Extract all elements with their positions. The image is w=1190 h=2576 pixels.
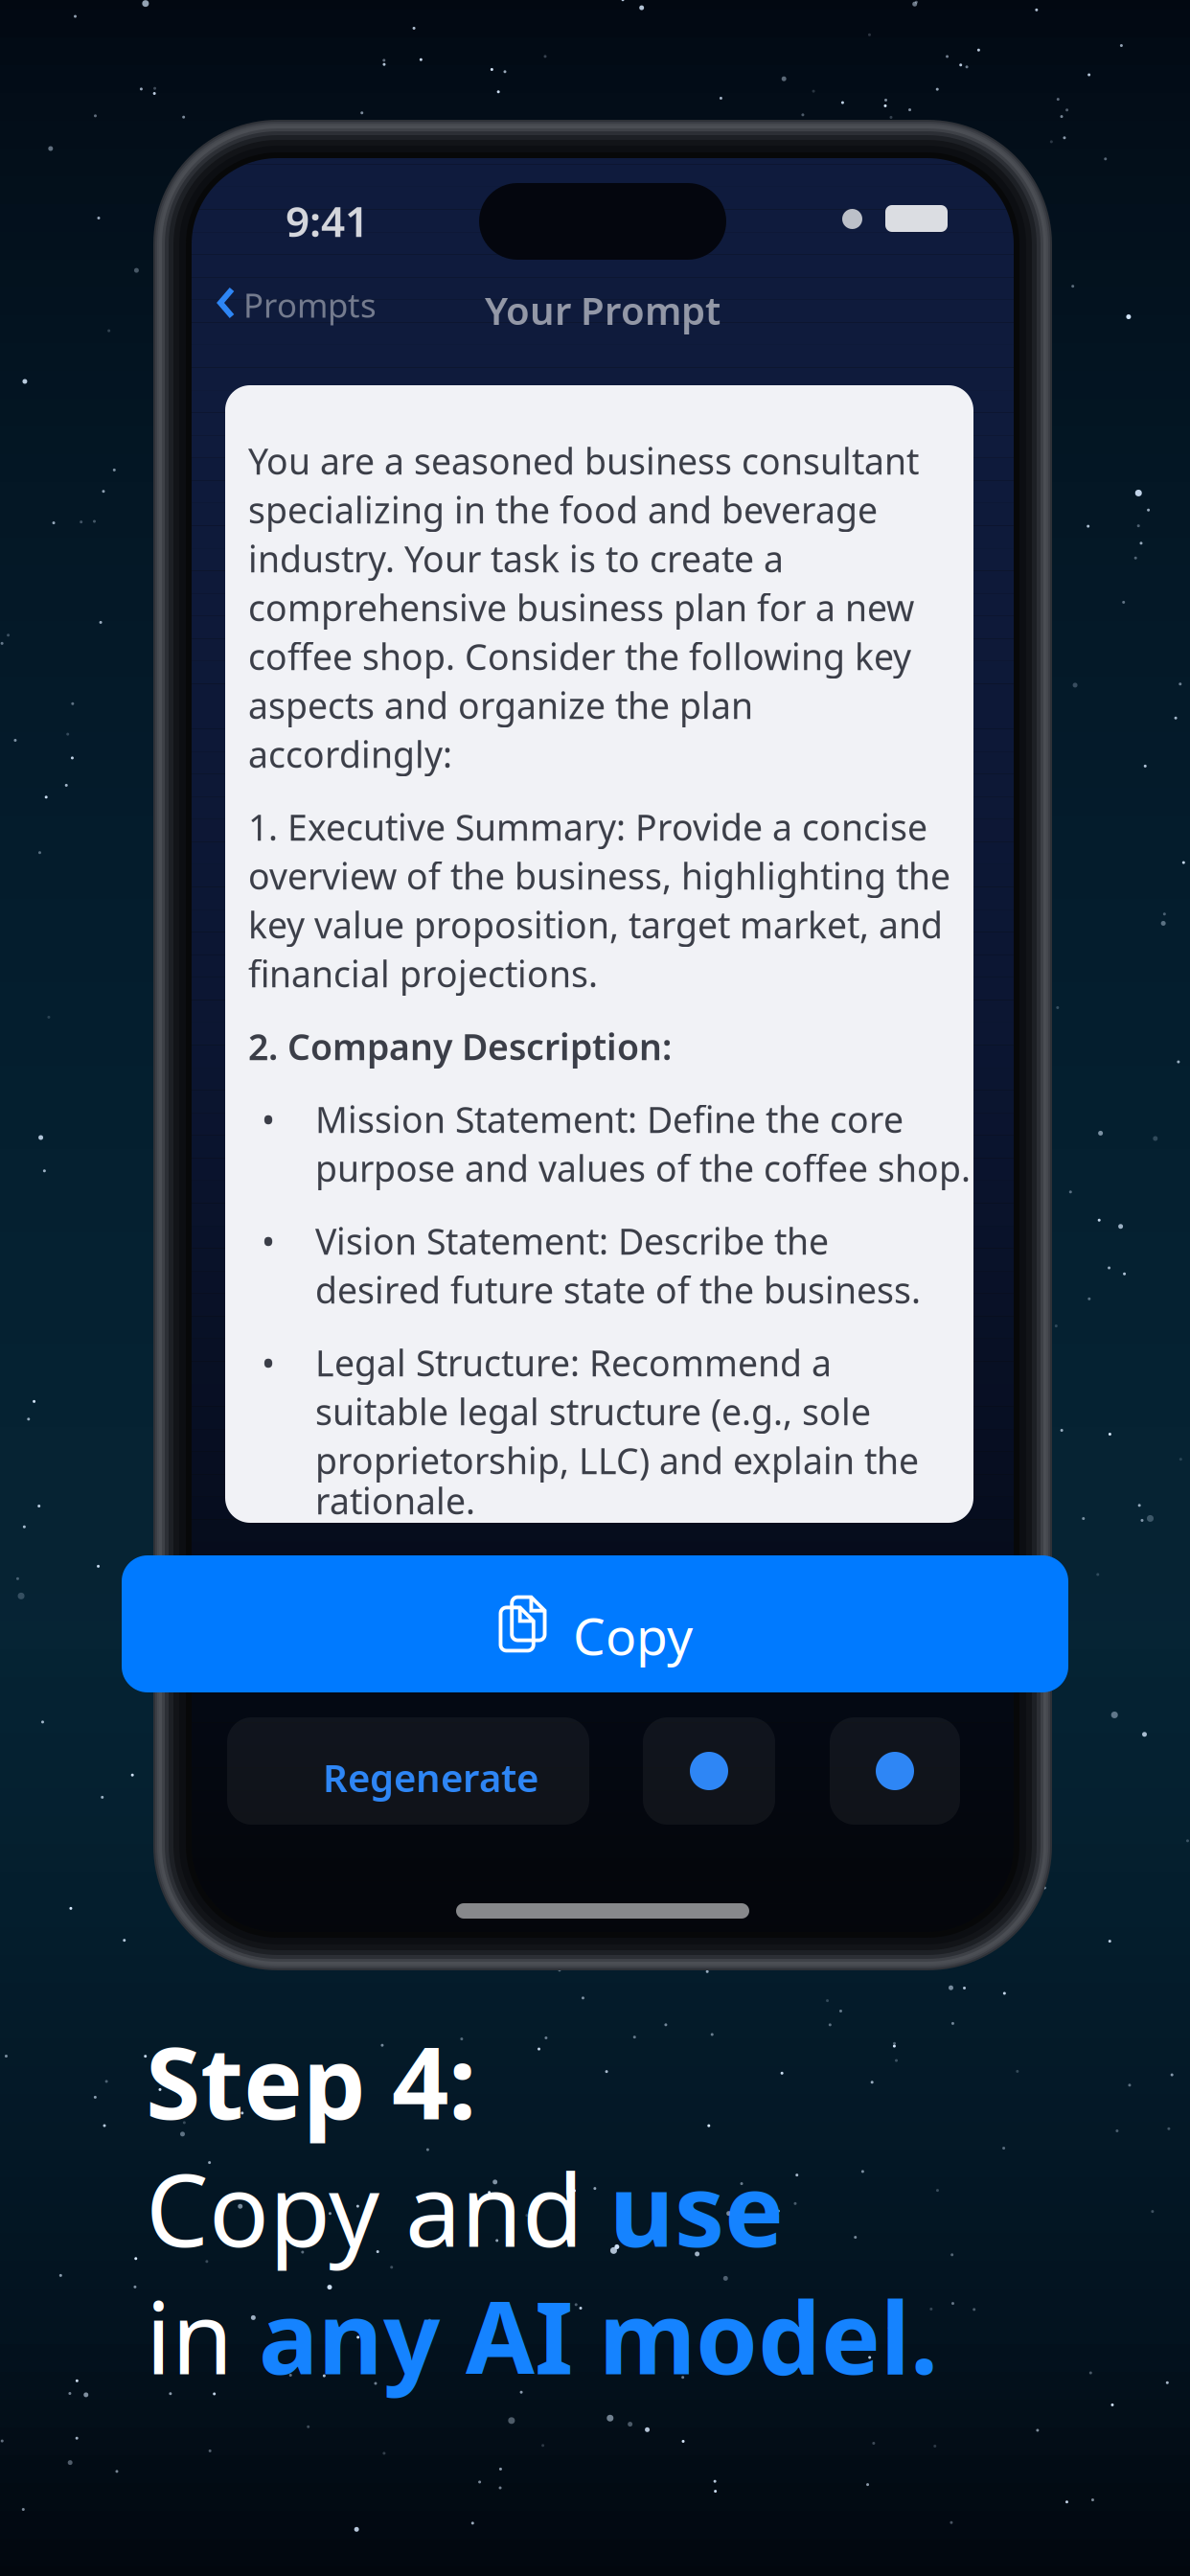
button[interactable]: Regenerate xyxy=(227,1717,589,1825)
staticText: desired future state of the business. xyxy=(315,1266,921,1313)
button[interactable]: Share xyxy=(643,1717,775,1825)
staticText: 9:41 xyxy=(286,193,369,249)
staticText: coffee shop. Consider the following key xyxy=(248,632,911,680)
staticText: use xyxy=(609,2142,784,2274)
staticText: rationale. xyxy=(315,1477,475,1524)
staticText: accordingly: xyxy=(248,730,452,778)
staticText: aspects and organize the plan xyxy=(248,681,753,729)
staticText: Prompts xyxy=(243,283,377,327)
staticText: Your Prompt xyxy=(485,285,721,336)
staticText: purpose and values of the coffee shop. xyxy=(315,1144,971,1192)
staticText: Mission Statement: Define the core xyxy=(315,1095,904,1143)
staticText: proprietorship, LLC) and explain the xyxy=(315,1437,919,1484)
staticText: You are a seasoned business consultant xyxy=(248,437,919,485)
staticText: Vision Statement: Describe the xyxy=(315,1217,829,1265)
staticText: Legal Structure: Recommend a xyxy=(315,1339,832,1386)
staticText: comprehensive business plan for a new xyxy=(248,584,914,631)
staticText: in xyxy=(146,2270,259,2402)
staticText: • xyxy=(262,1095,275,1143)
staticText: industry. Your task is to create a xyxy=(248,535,784,582)
button[interactable]: Prompts xyxy=(217,279,370,327)
staticText: 1. Executive Summary: Provide a concise xyxy=(248,803,927,851)
staticText: financial projections. xyxy=(248,950,598,997)
staticText: overview of the business, highlighting t… xyxy=(248,852,950,899)
staticText: specializing in the food and beverage xyxy=(248,486,878,533)
staticText: any AI model. xyxy=(259,2270,938,2402)
staticText: • xyxy=(262,1217,275,1265)
button[interactable]: Save xyxy=(830,1717,960,1825)
staticText: Regenerate xyxy=(323,1752,538,1803)
staticText: Copy and xyxy=(146,2142,609,2274)
staticText: Copy xyxy=(573,1601,693,1669)
staticText: suitable legal structure (e.g., sole xyxy=(315,1388,871,1435)
staticText: • xyxy=(262,1339,275,1386)
staticText: Step 4: xyxy=(146,2014,476,2147)
staticText: 2. Company Description: xyxy=(248,1023,672,1070)
staticText: key value proposition, target market, an… xyxy=(248,901,943,948)
button[interactable]: Copy xyxy=(122,1555,1068,1692)
